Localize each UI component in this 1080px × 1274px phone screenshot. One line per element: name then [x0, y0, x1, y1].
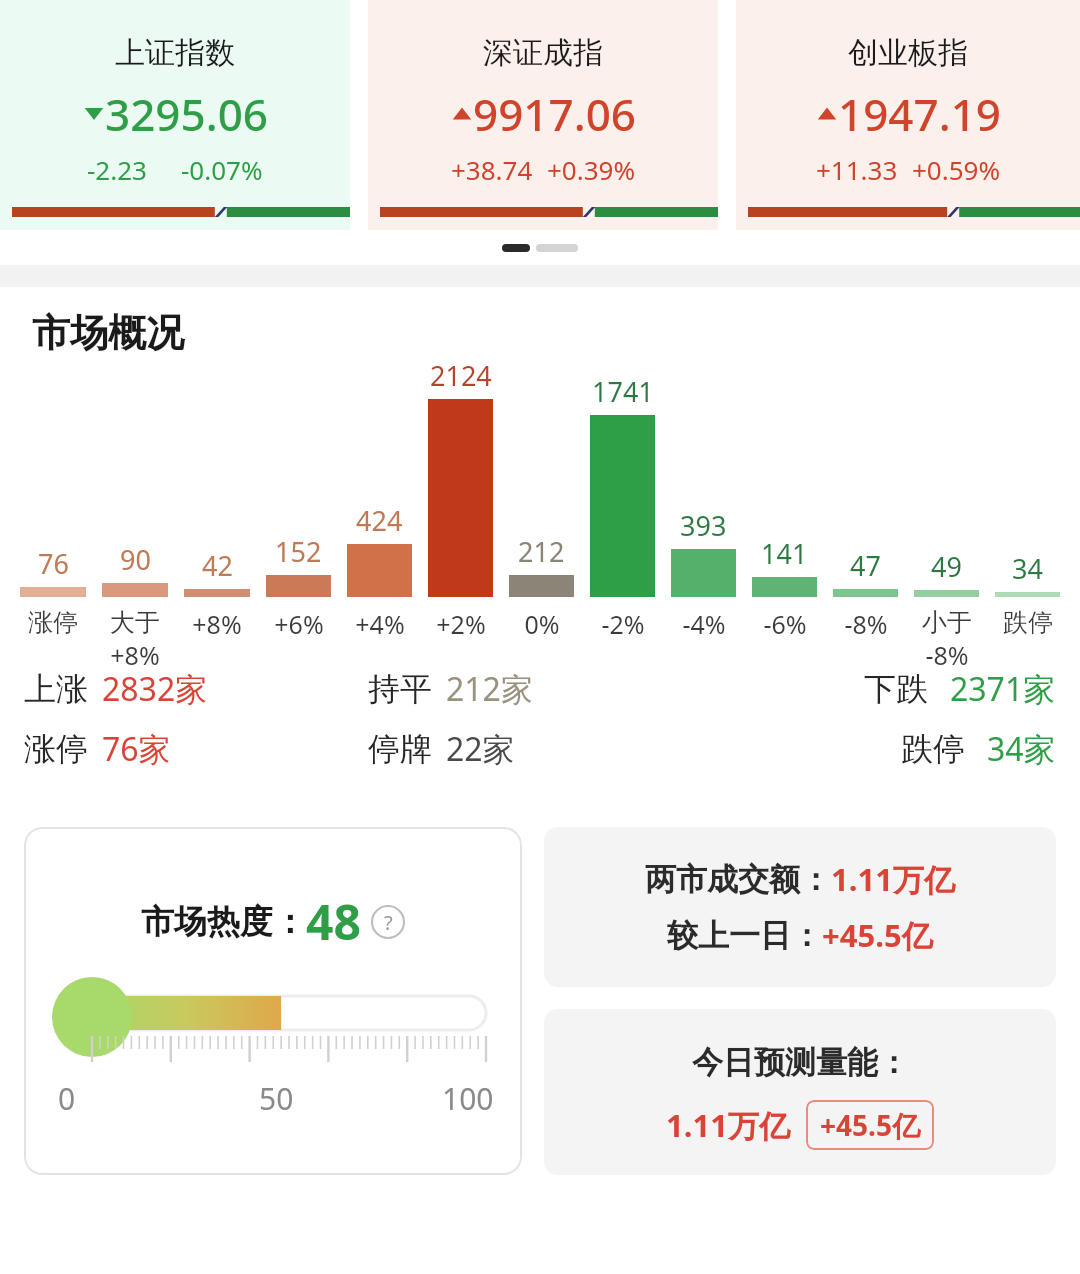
staticText: +45.5亿 [822, 914, 933, 956]
staticText: 393 [680, 507, 727, 544]
staticText: -0.07% [181, 152, 263, 187]
staticText: 0 [58, 1078, 76, 1119]
staticText: +0.39% [547, 152, 636, 187]
staticText: +11.33 [816, 152, 898, 187]
staticText: 涨停 [28, 607, 78, 638]
staticText: 跌停 [901, 729, 965, 769]
staticText: +2% [436, 607, 486, 641]
staticText: 跌停 [1003, 607, 1053, 638]
staticText: 2832家 [102, 667, 208, 711]
staticText: +38.74 [451, 152, 533, 187]
button[interactable]: 两市成交额： [544, 827, 1056, 987]
staticText: 3295.06 [105, 84, 268, 144]
staticText: -2% [601, 607, 645, 641]
staticText: 下跌 [864, 669, 928, 709]
staticText: 76家 [102, 727, 171, 771]
staticText: 48 [306, 889, 361, 954]
staticText: 涨停 [24, 729, 88, 769]
staticText: 停牌 [368, 729, 432, 769]
button[interactable]: 深证成指 [368, 0, 718, 230]
staticText: 42 [202, 547, 233, 584]
staticText: 34 [1012, 550, 1043, 587]
staticText: 1947.19 [838, 84, 1001, 144]
staticText: 1.11万亿 [666, 1104, 790, 1146]
staticText: +0.59% [912, 152, 1001, 187]
staticText: -8% [925, 638, 969, 667]
staticText: 100 [442, 1078, 494, 1119]
staticText: 2371家 [950, 667, 1056, 711]
staticText: 1741 [592, 373, 654, 410]
staticText: 小于 [922, 607, 972, 638]
staticText: 34家 [987, 727, 1056, 771]
button[interactable]: 创业板指 [736, 0, 1080, 230]
button[interactable]: 今日预测量能： [544, 1009, 1056, 1175]
button[interactable]: 上证指数 [0, 0, 350, 230]
staticText: -8% [844, 607, 888, 641]
staticText: 深证成指 [483, 34, 603, 72]
staticText: +8% [192, 607, 242, 641]
staticText: 212家 [446, 667, 533, 711]
staticText: 49 [931, 548, 962, 585]
staticText: 持平 [368, 669, 432, 709]
staticText: 424 [356, 502, 403, 539]
staticText: 50 [259, 1078, 294, 1119]
staticText: +6% [274, 607, 324, 641]
staticText: 市场概况 [32, 309, 184, 357]
staticText: 创业板指 [848, 34, 968, 72]
staticText: 212 [518, 533, 565, 570]
staticText: 1.11万亿 [831, 858, 955, 900]
staticText: 76 [38, 545, 69, 582]
staticText: 141 [761, 535, 808, 572]
staticText: 较上一日： [667, 916, 822, 955]
staticText: 今日预测量能： [692, 1043, 909, 1082]
staticText: +8% [110, 638, 160, 667]
staticText: 两市成交额： [645, 860, 831, 899]
staticText: 大于 [110, 607, 160, 638]
staticText: 152 [275, 533, 322, 570]
staticText: 市场热度： [141, 901, 306, 943]
staticText: +4% [355, 607, 405, 641]
staticText: 90 [120, 541, 151, 578]
staticText: ? [384, 909, 393, 936]
staticText: 上涨 [24, 669, 88, 709]
staticText: 2124 [430, 357, 492, 394]
staticText: 0% [524, 607, 560, 641]
button[interactable]: 帮助 [371, 905, 405, 939]
staticText: 9917.06 [473, 84, 636, 144]
staticText: -6% [763, 607, 807, 641]
staticText: 22家 [446, 727, 515, 771]
button[interactable]: 市场热度： [24, 827, 522, 1175]
staticText: 上证指数 [115, 34, 235, 72]
staticText: -2.23 [87, 152, 147, 187]
staticText: -4% [682, 607, 726, 641]
staticText: +45.5亿 [820, 1106, 920, 1144]
staticText: 47 [850, 547, 881, 584]
